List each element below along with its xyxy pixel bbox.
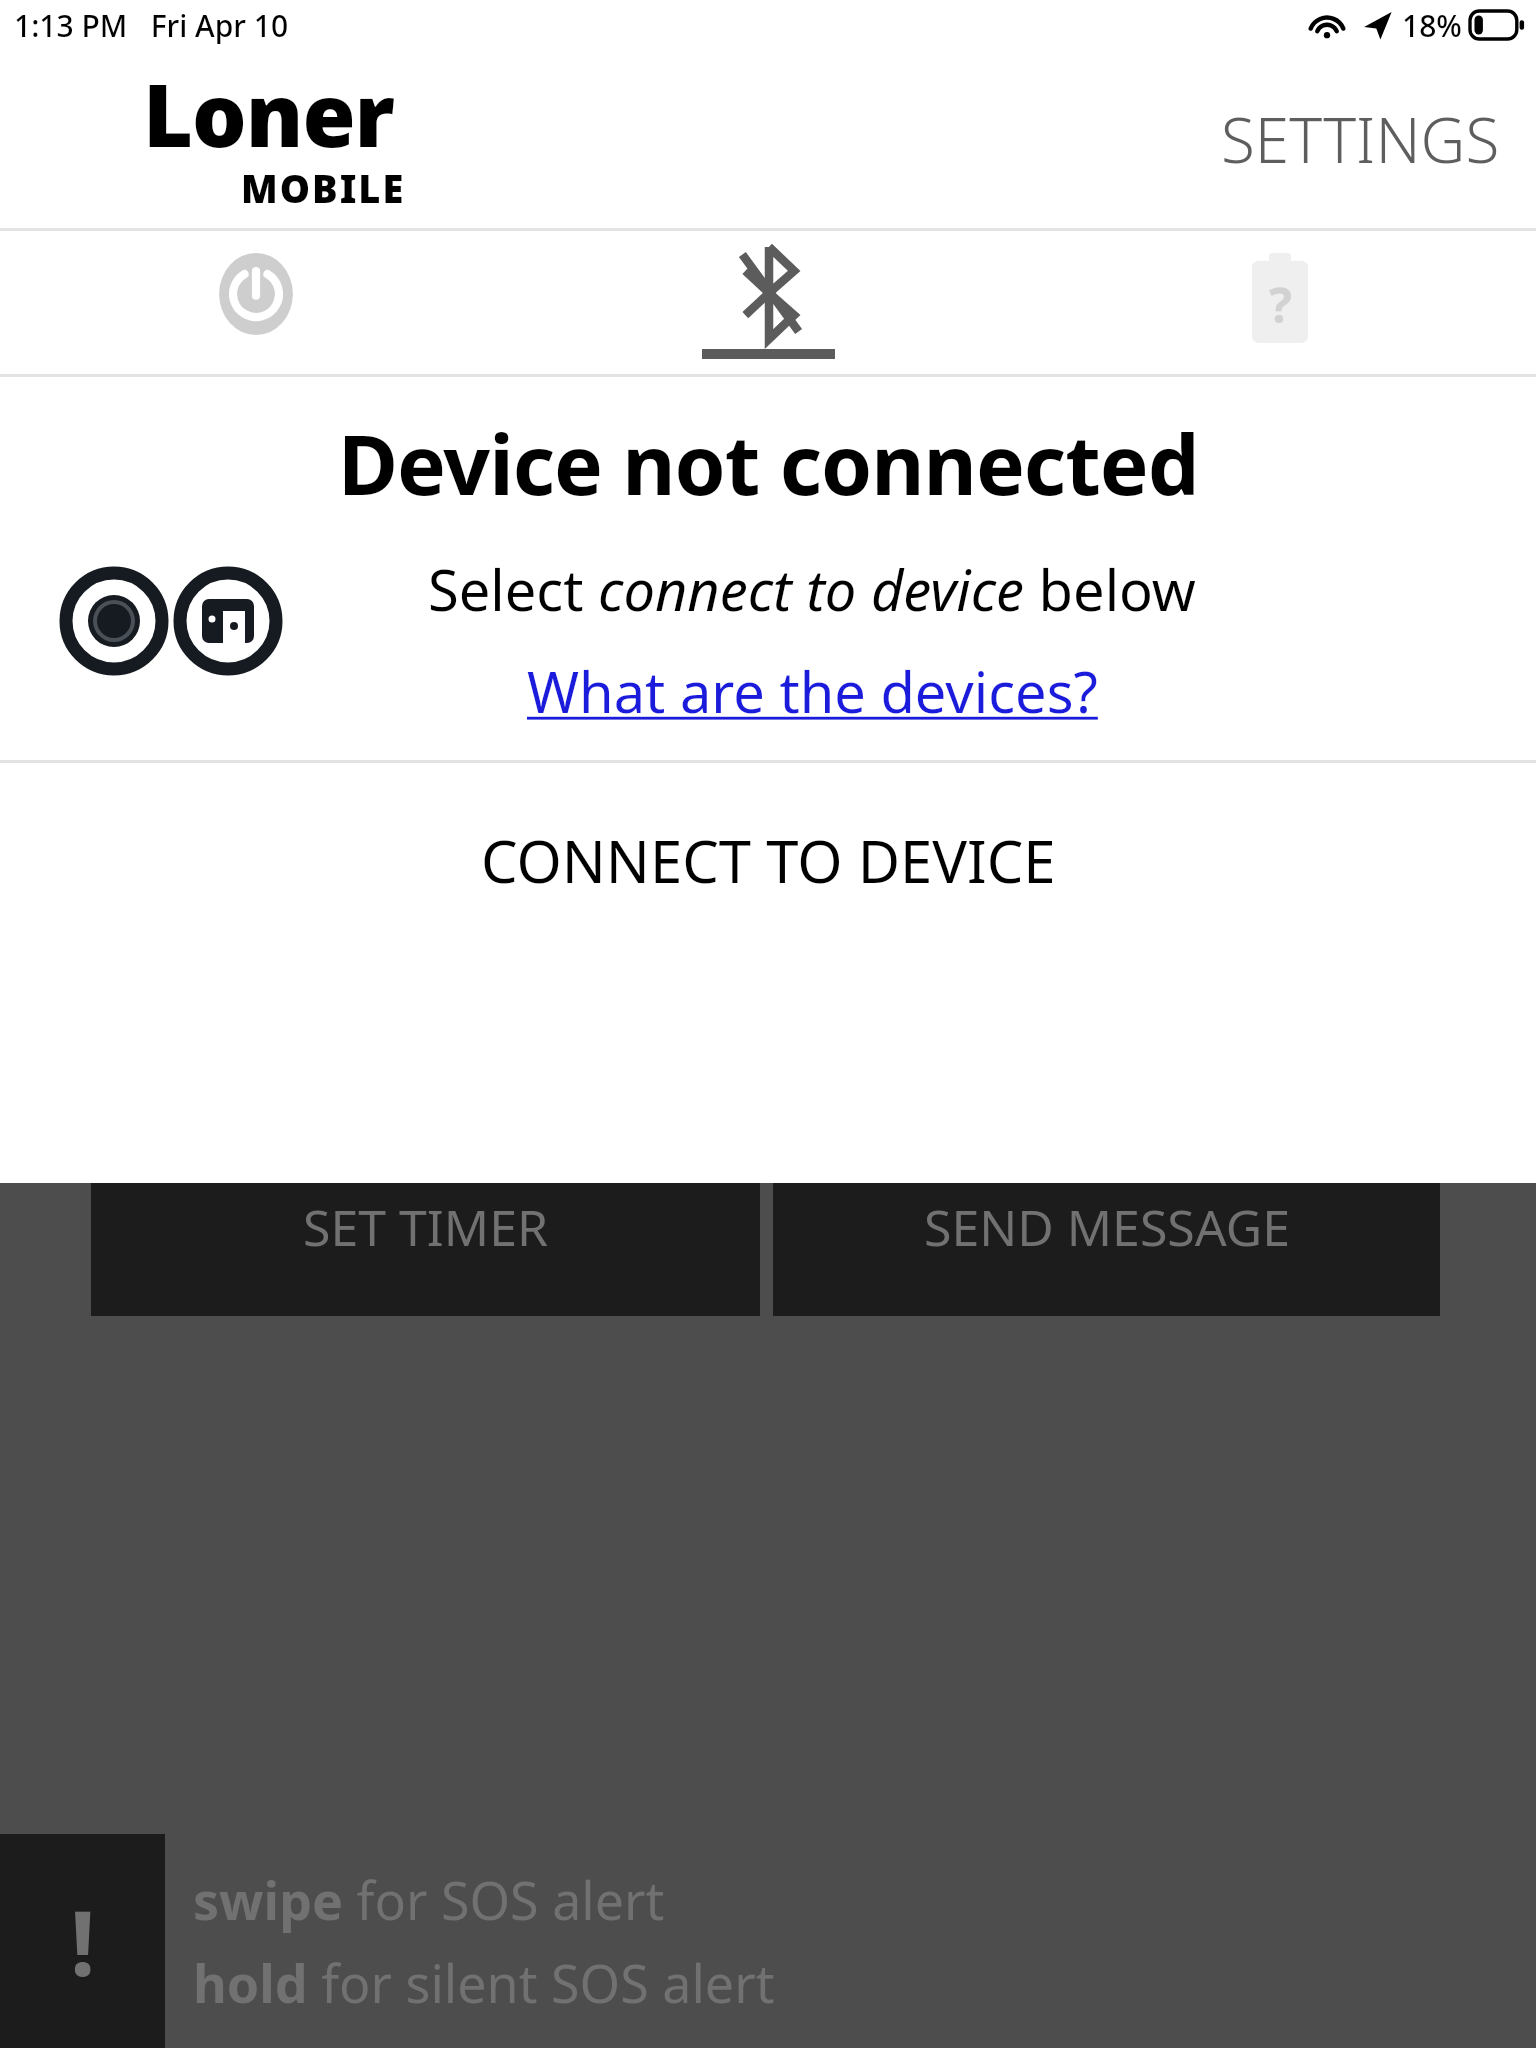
button[interactable]: SETTINGS	[1221, 97, 1500, 181]
staticText: 1:13 PM Fri Apr 10	[14, 5, 289, 46]
staticText: CONNECT TO DEVICE	[481, 821, 1056, 900]
button[interactable]: Battery unknown	[1024, 231, 1536, 374]
staticText: Loner	[143, 55, 394, 172]
button[interactable]: !	[0, 1834, 1536, 2048]
staticText: SEND MESSAGE	[924, 1193, 1290, 1261]
staticText: Device not connected	[338, 407, 1199, 519]
staticText: ?	[1269, 272, 1292, 337]
staticText: 18%	[1402, 5, 1462, 46]
staticText: Select connect to device below	[428, 551, 1196, 627]
button[interactable]: CONNECT TO DEVICE	[0, 763, 1536, 1183]
button[interactable]: Bluetooth disconnected	[512, 231, 1024, 374]
staticText: hold for silent SOS alert	[193, 1947, 775, 2018]
staticText: SET TIMER	[303, 1193, 549, 1261]
staticText: SETTINGS	[1221, 97, 1500, 181]
button[interactable]: Power status	[0, 231, 512, 374]
staticText: What are the devices?	[527, 653, 1098, 729]
button[interactable]: SET TIMER	[91, 1183, 760, 1316]
staticText: !	[70, 1880, 96, 2003]
button[interactable]: What are the devices?	[527, 653, 1098, 729]
staticText: swipe for SOS alert	[193, 1864, 665, 1935]
button[interactable]: SEND MESSAGE	[773, 1183, 1440, 1316]
staticText: MOBILE	[241, 162, 406, 214]
